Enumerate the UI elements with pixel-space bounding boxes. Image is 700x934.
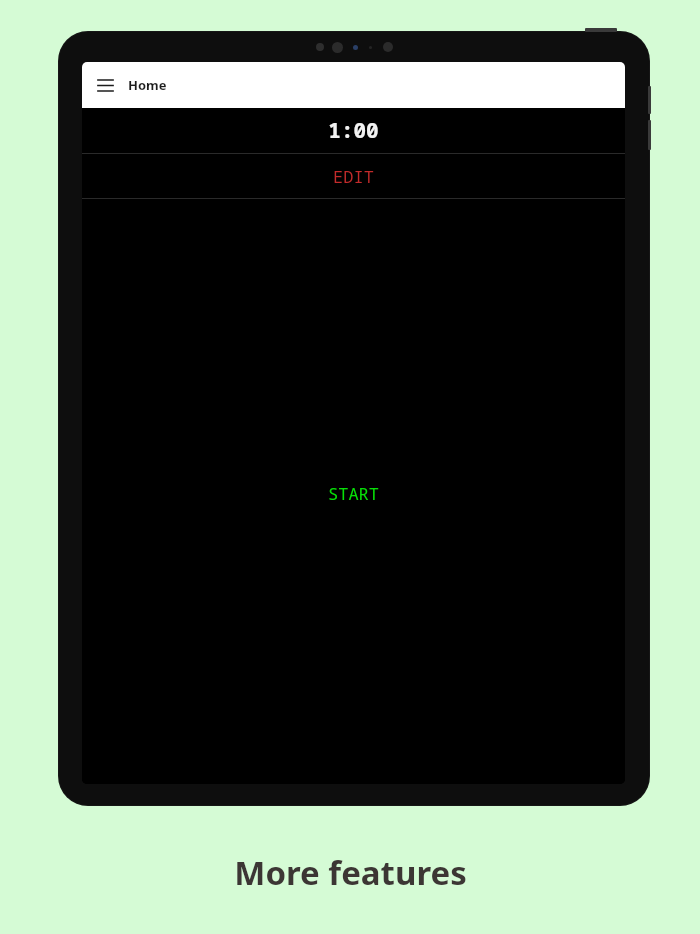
staticText: 1:00 xyxy=(328,116,379,145)
staticText: EDIT xyxy=(333,165,374,188)
button[interactable]: Open navigation menu xyxy=(90,70,120,100)
button[interactable]: EDIT xyxy=(82,154,625,198)
staticText: More features xyxy=(234,850,467,895)
staticText: Home xyxy=(128,76,167,94)
staticText: START xyxy=(328,482,379,505)
button[interactable]: 1:00 xyxy=(82,108,625,153)
button[interactable]: START xyxy=(328,482,379,505)
